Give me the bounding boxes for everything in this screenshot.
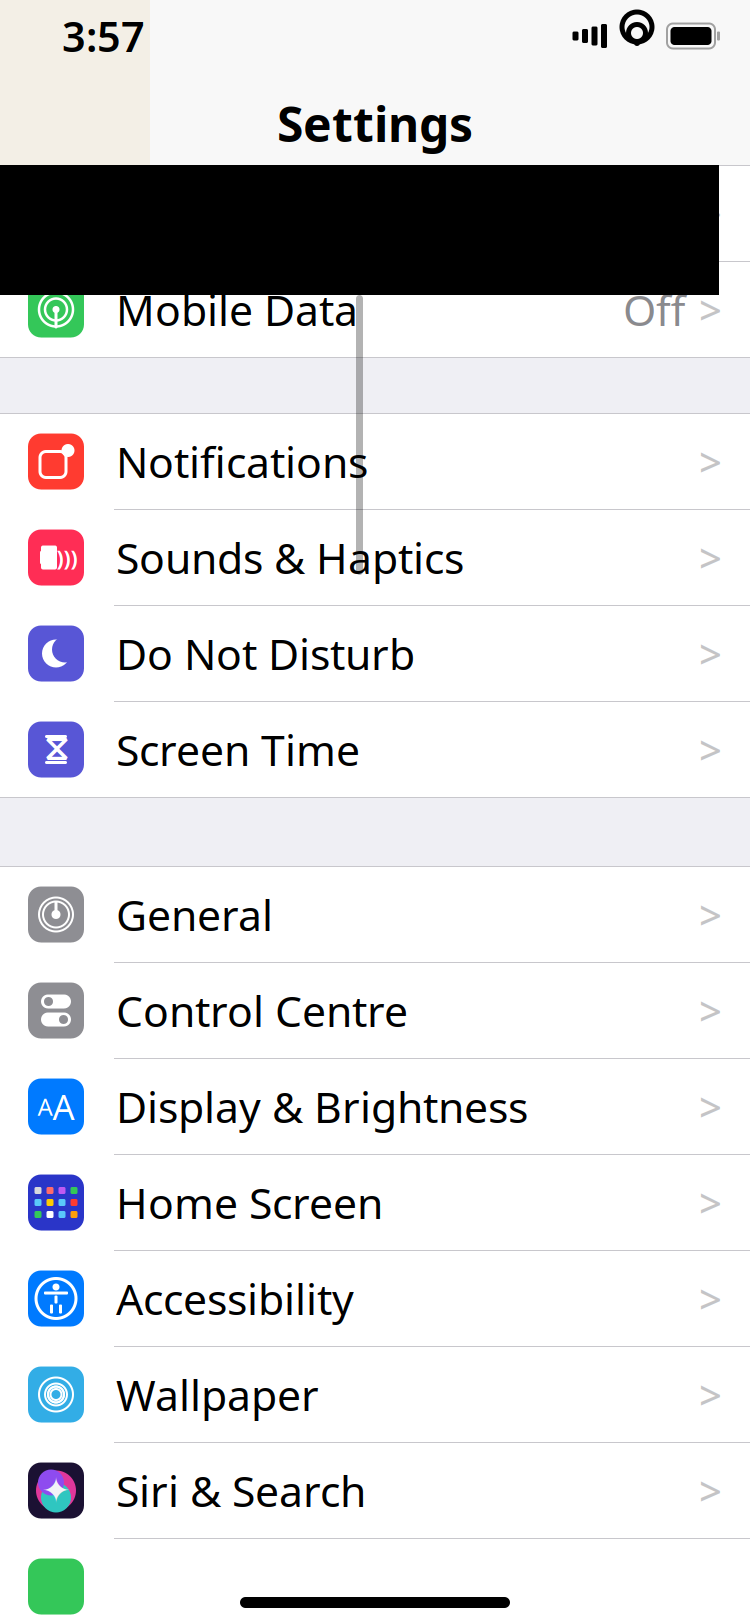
staticText: Settings [277, 92, 473, 155]
staticText: Siri & Search [116, 1462, 366, 1519]
button[interactable]: ฿ [0, 166, 750, 261]
button[interactable]: Accessibility [0, 1251, 750, 1346]
button[interactable]: Do Not Disturb [0, 606, 750, 701]
button[interactable]: ⧖ [0, 702, 750, 797]
staticText: 3:57 [62, 9, 145, 63]
staticText: Notifications [116, 433, 368, 490]
staticText: > [699, 627, 722, 680]
button[interactable]: ✦ [0, 1443, 750, 1538]
staticText: Off [623, 281, 685, 338]
staticText: A [37, 1091, 52, 1122]
staticText: Screen Time [116, 721, 360, 778]
button[interactable]: Home Screen [0, 1155, 750, 1250]
staticText: > [699, 1176, 722, 1229]
button[interactable]: ))) [0, 510, 750, 605]
staticText: > [699, 435, 722, 488]
staticText: > [699, 888, 722, 941]
staticText: > [699, 1464, 722, 1517]
staticText: Mobile Data [116, 281, 358, 338]
button[interactable]: Mobile Data [0, 262, 750, 357]
button[interactable]: A [0, 1059, 750, 1154]
staticText: Home Screen [116, 1174, 383, 1231]
staticText: A [52, 1083, 74, 1129]
staticText: Accessibility [116, 1270, 354, 1327]
staticText: ✦ [41, 1471, 70, 1510]
staticText: Control Centre [116, 982, 408, 1039]
button[interactable]: Control Centre [0, 963, 750, 1058]
staticText: > [699, 531, 722, 584]
staticText: > [699, 1368, 722, 1421]
staticText: Display & Brightness [116, 1078, 528, 1135]
button[interactable]: Wallpaper [0, 1347, 750, 1442]
staticText: > [699, 984, 722, 1037]
staticText: General [116, 886, 273, 943]
staticText: Wallpaper [116, 1366, 319, 1423]
staticText: Sounds & Haptics [116, 529, 464, 586]
staticText: ⧖ [44, 733, 68, 766]
button[interactable]: General [0, 867, 750, 962]
staticText: Do Not Disturb [116, 625, 415, 682]
staticText: > [699, 1080, 722, 1133]
staticText: > [699, 723, 722, 776]
staticText: > [699, 1272, 722, 1325]
staticText: > [699, 283, 722, 336]
staticText: > [699, 187, 722, 240]
button[interactable]: Notifications [0, 414, 750, 509]
staticText: ))) [56, 543, 77, 572]
